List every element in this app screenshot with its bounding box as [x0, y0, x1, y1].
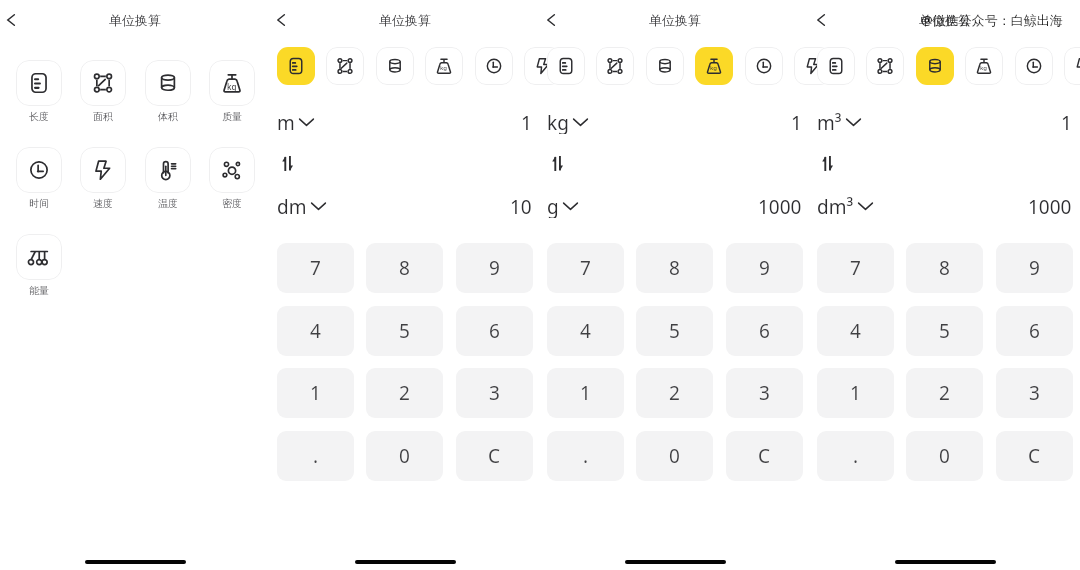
button[interactable]: Unit category 6 — [1064, 47, 1080, 85]
button[interactable]: Unit category 2 — [866, 47, 904, 85]
button[interactable]: m³ — [817, 110, 861, 134]
staticText: 6 — [759, 318, 770, 344]
button[interactable]: 1 — [277, 368, 354, 418]
button[interactable]: 8 — [366, 243, 443, 293]
staticText: 质量 — [209, 110, 255, 123]
button[interactable]: 2 — [636, 368, 713, 418]
button[interactable]: Unit category 1 — [547, 47, 585, 85]
button[interactable]: 5 — [636, 306, 713, 356]
button[interactable]: . — [547, 431, 624, 481]
button[interactable]: 7 — [817, 243, 894, 293]
staticText: 1 — [791, 110, 802, 134]
staticText: . — [313, 443, 319, 469]
button[interactable]: kg — [209, 60, 255, 123]
button[interactable]: 9 — [996, 243, 1073, 293]
button[interactable]: Unit category 5 — [475, 47, 513, 85]
button[interactable]: kg — [547, 110, 588, 134]
button[interactable]: Unit category 2 — [326, 47, 364, 85]
button[interactable]: C — [996, 431, 1073, 481]
button[interactable]: dm — [277, 194, 326, 218]
button[interactable]: Unit category 4 — [425, 47, 463, 85]
button[interactable]: 3 — [996, 368, 1073, 418]
button[interactable]: 面积 — [80, 60, 126, 123]
button[interactable]: Unit category 3 — [376, 47, 414, 85]
button[interactable]: Unit category 5 — [745, 47, 783, 85]
button[interactable]: 8 — [906, 243, 983, 293]
staticText: 时间 — [16, 197, 62, 210]
button[interactable]: 0 — [636, 431, 713, 481]
button[interactable]: dm³ — [817, 194, 873, 218]
button[interactable]: 长度 — [16, 60, 62, 123]
button[interactable]: 2 — [366, 368, 443, 418]
staticText: kg — [980, 64, 988, 72]
staticText: 9 — [759, 255, 770, 281]
button[interactable]: Swap units — [552, 152, 568, 174]
button[interactable]: 7 — [277, 243, 354, 293]
button[interactable]: Unit category 6 — [794, 47, 832, 85]
button[interactable]: 2 — [906, 368, 983, 418]
button[interactable]: 0 — [906, 431, 983, 481]
button[interactable]: 9 — [456, 243, 533, 293]
button[interactable]: Unit category 4 — [695, 47, 733, 85]
button[interactable]: 0 — [366, 431, 443, 481]
button[interactable]: Unit category 3 — [916, 47, 954, 85]
button[interactable]: 5 — [366, 306, 443, 356]
button[interactable]: . — [277, 431, 354, 481]
button[interactable]: Swap units — [822, 152, 838, 174]
button[interactable]: g — [547, 194, 578, 218]
button[interactable]: . — [817, 431, 894, 481]
button[interactable]: Unit category 1 — [277, 47, 315, 85]
staticText: . — [583, 443, 589, 469]
button[interactable]: 4 — [277, 306, 354, 356]
button[interactable]: 7 — [547, 243, 624, 293]
button[interactable]: 6 — [456, 306, 533, 356]
button[interactable]: Back — [807, 6, 835, 34]
button[interactable]: 3 — [456, 368, 533, 418]
staticText: 9 — [1029, 255, 1040, 281]
button[interactable]: 温度 — [145, 147, 191, 210]
staticText: 1000 — [1028, 194, 1072, 218]
button[interactable]: 6 — [726, 306, 803, 356]
staticText: C — [1028, 443, 1041, 469]
staticText: 5 — [669, 318, 680, 344]
button[interactable]: 5 — [906, 306, 983, 356]
button[interactable]: 速度 — [80, 147, 126, 210]
staticText: 9 — [489, 255, 500, 281]
button[interactable]: Unit category 4 — [965, 47, 1003, 85]
button[interactable]: C — [456, 431, 533, 481]
staticText: 6 — [1029, 318, 1040, 344]
button[interactable]: 体积 — [145, 60, 191, 123]
staticText: 速度 — [80, 197, 126, 210]
button[interactable]: 1 — [547, 368, 624, 418]
button[interactable]: 时间 — [16, 147, 62, 210]
button[interactable]: Back — [537, 6, 565, 34]
button[interactable]: 1 — [817, 368, 894, 418]
button[interactable]: Back — [267, 6, 295, 34]
staticText: kg — [440, 64, 448, 72]
button[interactable]: Unit category 2 — [596, 47, 634, 85]
button[interactable]: Back — [0, 6, 25, 34]
staticText: 密度 — [209, 197, 255, 210]
button[interactable]: 4 — [547, 306, 624, 356]
staticText: 1 — [521, 110, 532, 134]
button[interactable]: 密度 — [209, 147, 255, 210]
button[interactable]: Unit category 5 — [1015, 47, 1053, 85]
button[interactable]: Unit category 6 — [524, 47, 562, 85]
staticText: kg — [227, 81, 237, 92]
staticText: @微信公众号：白鲸出海 — [921, 11, 1063, 29]
button[interactable]: 4 — [817, 306, 894, 356]
staticText: 7 — [850, 255, 861, 281]
button[interactable]: Swap units — [282, 152, 298, 174]
staticText: 4 — [310, 318, 321, 344]
staticText: 6 — [489, 318, 500, 344]
button[interactable]: 6 — [996, 306, 1073, 356]
button[interactable]: Unit category 1 — [817, 47, 855, 85]
staticText: 单位换算 — [649, 12, 701, 28]
button[interactable]: 3 — [726, 368, 803, 418]
button[interactable]: Unit category 3 — [646, 47, 684, 85]
button[interactable]: m — [277, 110, 314, 134]
button[interactable]: 能量 — [16, 234, 62, 297]
button[interactable]: C — [726, 431, 803, 481]
button[interactable]: 9 — [726, 243, 803, 293]
button[interactable]: 8 — [636, 243, 713, 293]
